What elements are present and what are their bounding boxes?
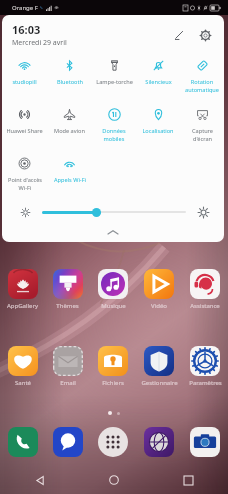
staticText: Gestionnaire bbox=[141, 379, 178, 387]
button[interactable]: Vidéo bbox=[136, 269, 182, 310]
staticText: Mode avion bbox=[54, 127, 85, 135]
staticText: 16:03 bbox=[12, 22, 41, 37]
staticText: Capture d'écran bbox=[192, 127, 213, 142]
button[interactable]: Lampe-torche bbox=[92, 54, 136, 103]
button[interactable]: Phone bbox=[8, 427, 38, 457]
button[interactable]: Thèmes bbox=[45, 269, 90, 310]
button[interactable]: Edit bbox=[167, 24, 189, 46]
staticText: Fichiers bbox=[102, 379, 124, 387]
button[interactable]: Données mobiles bbox=[92, 103, 136, 152]
staticText: Mercredi 29 avril bbox=[12, 38, 67, 48]
staticText: Assistance bbox=[190, 302, 220, 310]
button[interactable]: AppGallery bbox=[0, 269, 45, 310]
button[interactable]: Silencieux bbox=[136, 54, 180, 103]
staticText: Thèmes bbox=[56, 302, 79, 310]
button[interactable]: Browser bbox=[144, 427, 174, 457]
staticText: studiopill bbox=[12, 78, 37, 86]
button[interactable]: Home bbox=[103, 469, 125, 491]
button[interactable]: Email bbox=[45, 346, 90, 387]
button[interactable]: Messages bbox=[53, 427, 83, 457]
button[interactable]: Assistance bbox=[182, 269, 228, 310]
button[interactable]: Recents bbox=[177, 469, 199, 491]
staticText: Données mobiles bbox=[102, 127, 126, 142]
staticText: Santé bbox=[15, 379, 31, 387]
button[interactable]: Gestionnaire bbox=[136, 346, 182, 387]
staticText: Silencieux bbox=[145, 78, 172, 86]
button[interactable]: Capture d'écran bbox=[180, 103, 224, 152]
button[interactable]: Point d'accès Wi-Fi bbox=[2, 152, 47, 201]
staticText: Bluetooth bbox=[57, 78, 83, 86]
staticText: AppGallery bbox=[7, 302, 38, 310]
button[interactable]: Camera bbox=[190, 427, 220, 457]
staticText: Email bbox=[60, 379, 76, 387]
button[interactable]: Mode avion bbox=[47, 103, 92, 152]
button[interactable]: Bluetooth bbox=[47, 54, 92, 103]
staticText: Huawei Share bbox=[6, 127, 43, 135]
staticText: Lampe-torche bbox=[96, 78, 133, 86]
button[interactable]: Paramètres bbox=[182, 346, 228, 387]
staticText: Orange F bbox=[12, 4, 38, 12]
staticText: Appels Wi-Fi bbox=[54, 176, 86, 184]
button[interactable]: Settings bbox=[194, 24, 216, 46]
button[interactable]: studiopill bbox=[2, 54, 47, 103]
staticText: Vidéo bbox=[151, 302, 167, 310]
button[interactable]: Back bbox=[29, 469, 51, 491]
button[interactable]: Rotation automatique bbox=[180, 54, 224, 103]
button[interactable]: Fichiers bbox=[90, 346, 136, 387]
button[interactable]: Huawei Share bbox=[2, 103, 47, 152]
button[interactable]: Santé bbox=[0, 346, 45, 387]
button[interactable]: Localisation bbox=[136, 103, 180, 152]
button[interactable]: App drawer bbox=[98, 427, 128, 457]
staticText: Point d'accès Wi-Fi bbox=[8, 176, 42, 191]
button[interactable]: Appels Wi-Fi bbox=[47, 152, 92, 201]
staticText: Paramètres bbox=[189, 379, 222, 387]
staticText: Musique bbox=[101, 302, 126, 310]
staticText: Rotation automatique bbox=[185, 78, 219, 93]
staticText: Localisation bbox=[142, 127, 174, 135]
button[interactable]: Musique bbox=[90, 269, 136, 310]
